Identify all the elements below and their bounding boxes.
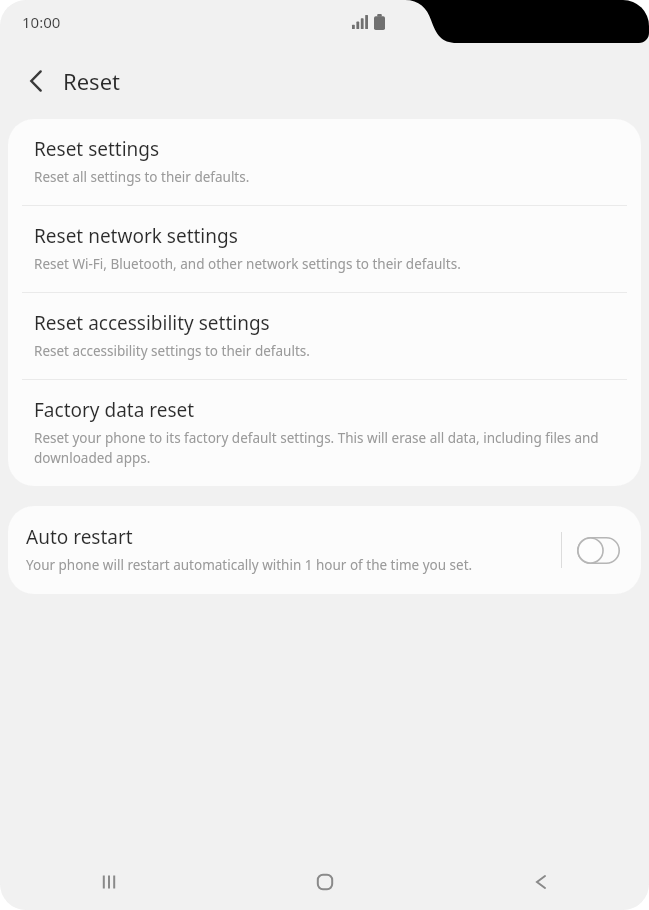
staticText: Reset network settings	[34, 223, 238, 249]
button[interactable]: Factory data reset	[8, 380, 641, 486]
button[interactable]: Reset network settings	[8, 206, 641, 292]
button[interactable]: Auto restart toggle	[576, 535, 620, 565]
staticText: Auto restart	[26, 524, 133, 550]
button[interactable]: Auto restart	[8, 506, 641, 594]
staticText: Reset accessibility settings	[34, 310, 270, 336]
staticText: Reset	[63, 66, 120, 96]
button[interactable]: Recent apps	[0, 854, 217, 910]
staticText: Reset your phone to its factory default …	[34, 429, 617, 467]
staticText: Reset settings	[34, 136, 160, 162]
staticText: Factory data reset	[34, 397, 195, 423]
staticText: Reset Wi-Fi, Bluetooth, and other networ…	[34, 255, 461, 273]
button[interactable]: Home	[217, 854, 433, 910]
staticText: Your phone will restart automatically wi…	[26, 556, 473, 574]
staticText: Reset accessibility settings to their de…	[34, 342, 310, 360]
staticText: Reset all settings to their defaults.	[34, 168, 250, 186]
button[interactable]: Back	[433, 854, 649, 910]
button[interactable]: Back	[14, 59, 58, 103]
staticText: 10:00	[22, 12, 61, 32]
button[interactable]: Reset accessibility settings	[8, 293, 641, 379]
button[interactable]: Reset settings	[8, 119, 641, 205]
